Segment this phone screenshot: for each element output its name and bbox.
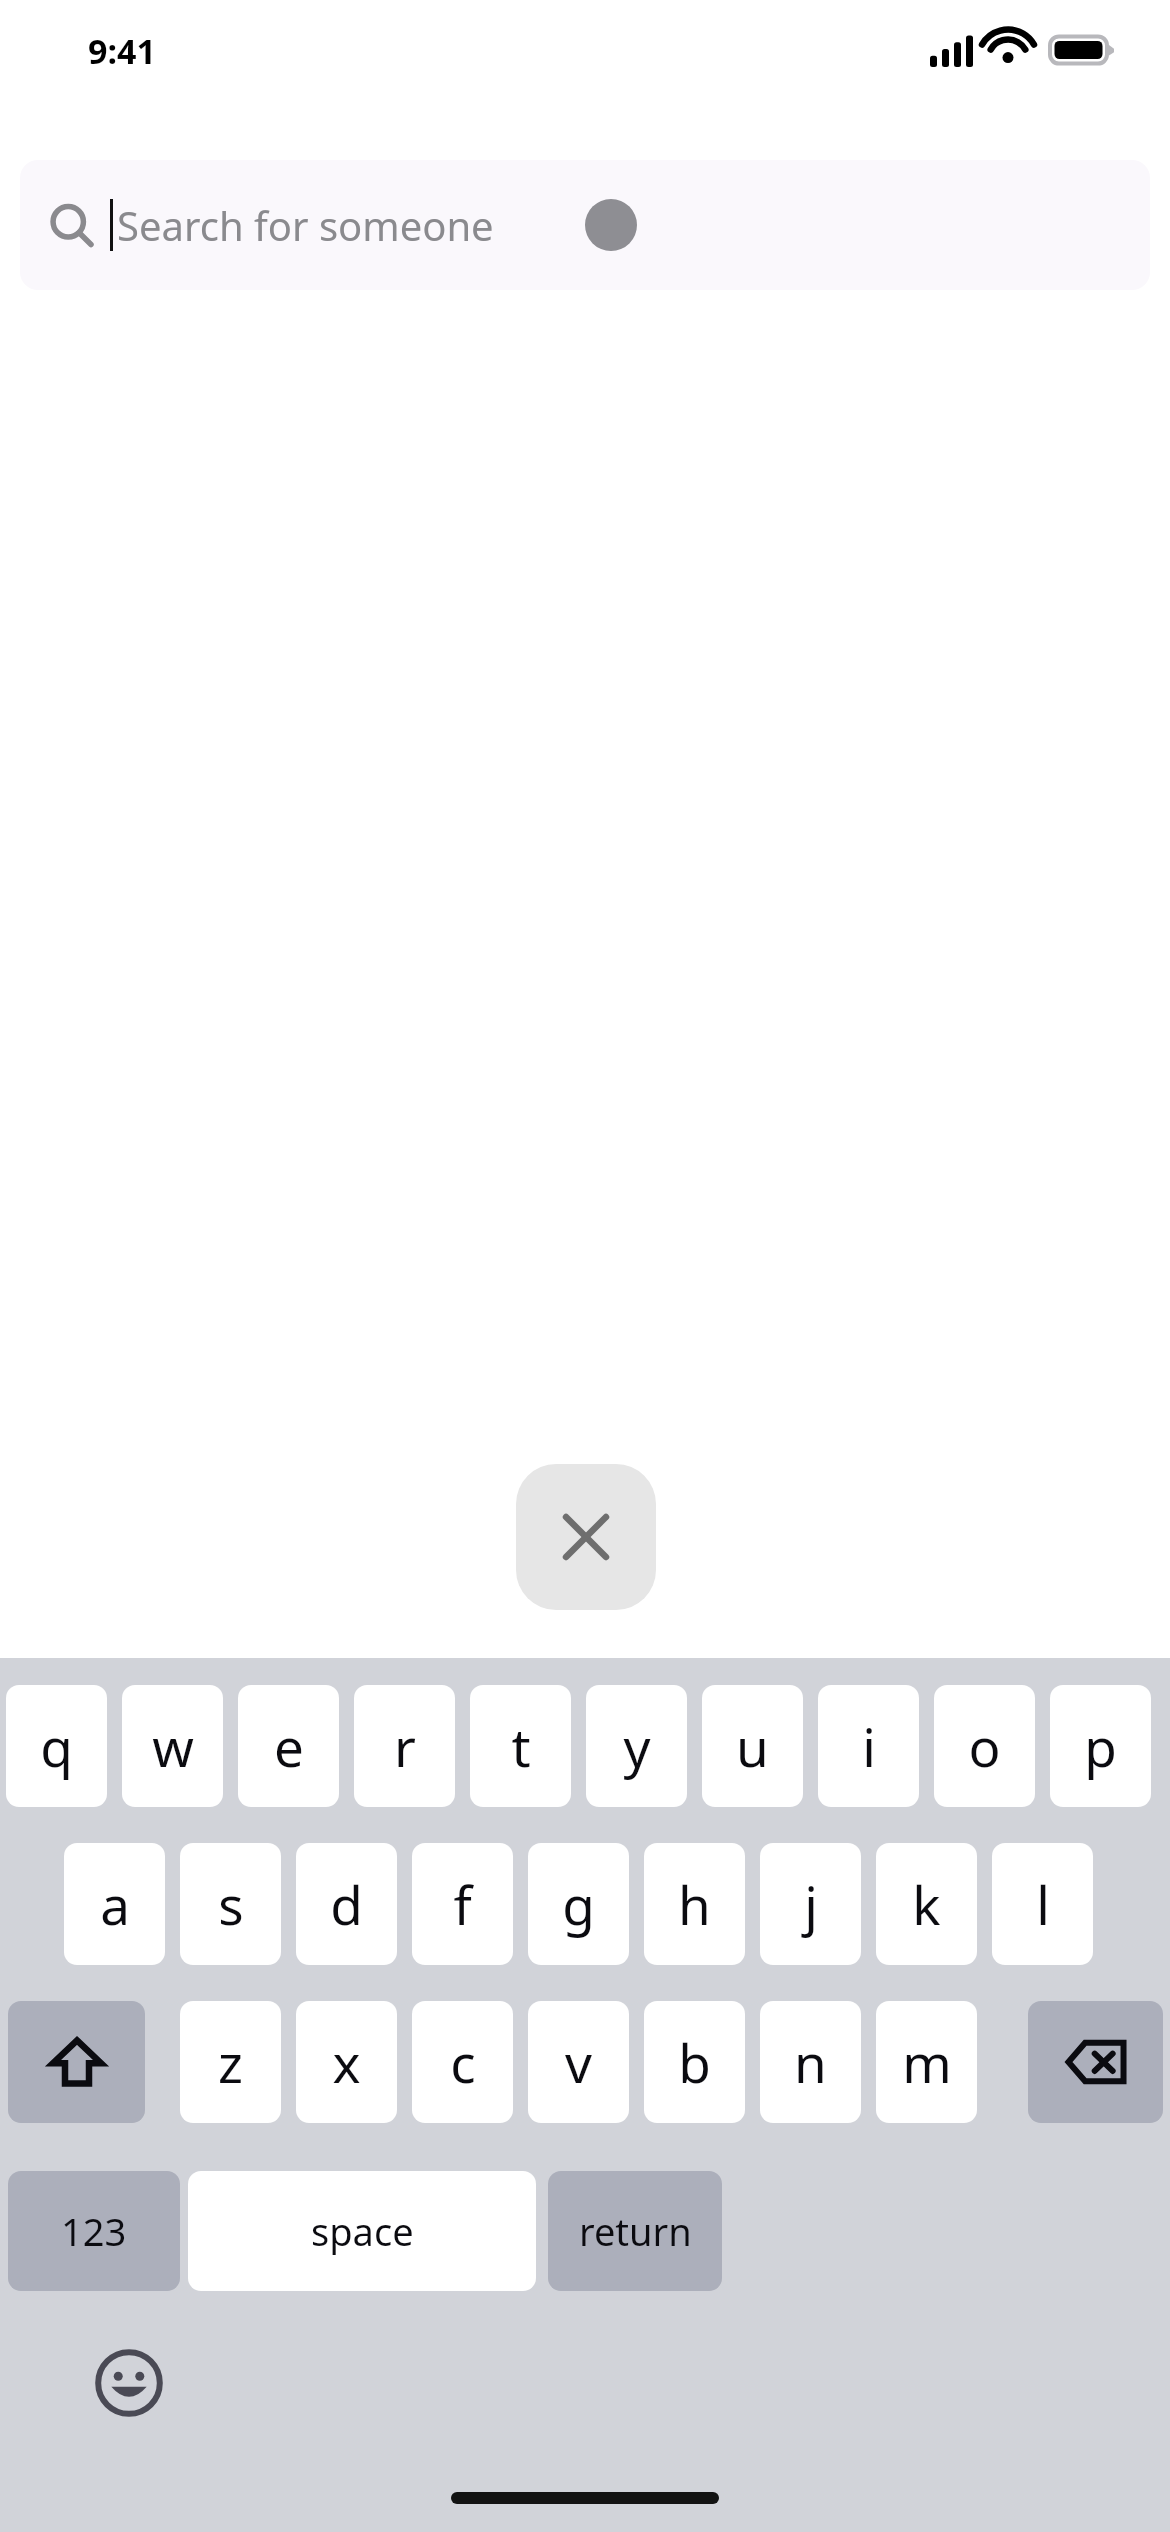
button[interactable]: m — [876, 2001, 977, 2123]
staticText: t — [511, 1710, 531, 1782]
button[interactable]: i — [818, 1685, 919, 1807]
button[interactable]: h — [644, 1843, 745, 1965]
button[interactable]: k — [876, 1843, 977, 1965]
button[interactable]: return — [548, 2171, 722, 2291]
button[interactable]: r — [354, 1685, 455, 1807]
staticText: return — [579, 2205, 692, 2257]
button[interactable]: b — [644, 2001, 745, 2123]
staticText: c — [450, 2026, 476, 2098]
button[interactable]: d — [296, 1843, 397, 1965]
staticText: h — [678, 1868, 711, 1940]
staticText: w — [152, 1710, 194, 1782]
staticText: g — [562, 1868, 595, 1940]
button[interactable]: 123 — [8, 2171, 180, 2291]
staticText: y — [623, 1710, 651, 1782]
staticText: d — [330, 1868, 363, 1940]
staticText: m — [902, 2026, 952, 2098]
button[interactable]: Emoji — [94, 2348, 164, 2418]
button[interactable]: w — [122, 1685, 223, 1807]
staticText: o — [968, 1710, 1001, 1782]
button[interactable]: f — [412, 1843, 513, 1965]
button[interactable]: e — [238, 1685, 339, 1807]
button[interactable]: v — [528, 2001, 629, 2123]
button[interactable]: p — [1050, 1685, 1151, 1807]
button[interactable]: Backspace — [1028, 2001, 1163, 2123]
staticText: l — [1036, 1868, 1050, 1940]
button[interactable]: s — [180, 1843, 281, 1965]
staticText: a — [100, 1868, 130, 1940]
button[interactable]: a — [64, 1843, 165, 1965]
button[interactable]: n — [760, 2001, 861, 2123]
button[interactable]: u — [702, 1685, 803, 1807]
button[interactable]: t — [470, 1685, 571, 1807]
staticText: q — [40, 1710, 73, 1782]
staticText: 123 — [61, 2205, 127, 2257]
staticText: p — [1084, 1710, 1117, 1782]
staticText: s — [218, 1868, 244, 1940]
button[interactable]: Search for someone — [20, 160, 1150, 290]
button[interactable]: space — [188, 2171, 536, 2291]
staticText: r — [394, 1710, 416, 1782]
staticText: space — [311, 2205, 414, 2257]
button[interactable]: g — [528, 1843, 629, 1965]
staticText: e — [274, 1710, 304, 1782]
staticText: b — [678, 2026, 711, 2098]
staticText: u — [736, 1710, 769, 1782]
staticText: z — [218, 2026, 243, 2098]
button[interactable]: l — [992, 1843, 1093, 1965]
button[interactable]: Shift — [8, 2001, 145, 2123]
staticText: x — [332, 2026, 361, 2098]
button[interactable]: y — [586, 1685, 687, 1807]
staticText: i — [862, 1710, 876, 1782]
staticText: n — [794, 2026, 827, 2098]
staticText: 9:41 — [88, 28, 156, 74]
button[interactable]: z — [180, 2001, 281, 2123]
button[interactable]: x — [296, 2001, 397, 2123]
button[interactable]: o — [934, 1685, 1035, 1807]
button[interactable]: c — [412, 2001, 513, 2123]
staticText: Search for someone — [117, 198, 494, 252]
staticText: k — [912, 1868, 941, 1940]
staticText: v — [565, 2026, 592, 2098]
button[interactable]: Close — [516, 1464, 656, 1610]
staticText: f — [453, 1868, 472, 1940]
button[interactable]: q — [6, 1685, 107, 1807]
staticText: j — [804, 1868, 818, 1940]
button[interactable]: j — [760, 1843, 861, 1965]
